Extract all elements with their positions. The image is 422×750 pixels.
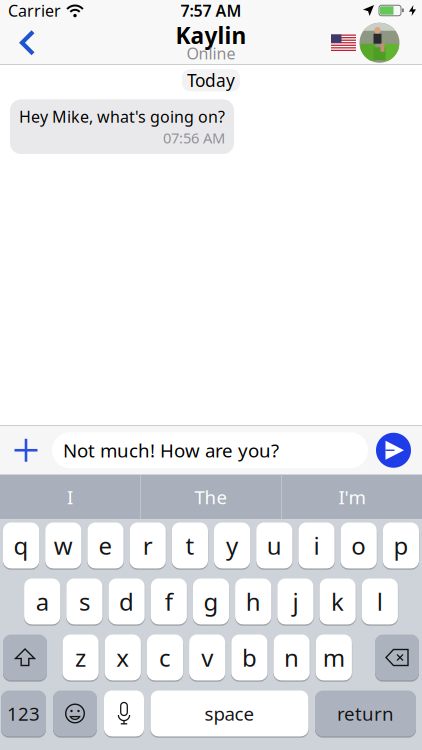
button[interactable]: i bbox=[298, 522, 335, 568]
staticText: b bbox=[242, 642, 257, 673]
button[interactable]: q bbox=[3, 522, 39, 568]
button[interactable]: return bbox=[315, 690, 416, 736]
button[interactable]: Emoji bbox=[53, 690, 97, 736]
button[interactable]: space bbox=[150, 690, 308, 736]
button[interactable]: r bbox=[130, 522, 166, 568]
button[interactable]: Profile bbox=[356, 23, 422, 63]
button[interactable]: p bbox=[383, 522, 419, 568]
button[interactable]: Shift bbox=[3, 634, 47, 680]
button[interactable]: 123 bbox=[1, 690, 46, 736]
button[interactable]: h bbox=[235, 578, 271, 624]
button[interactable]: s bbox=[66, 578, 102, 624]
button[interactable]: Dictate bbox=[104, 690, 144, 736]
staticText: The bbox=[194, 485, 227, 509]
staticText: w bbox=[54, 530, 73, 561]
button[interactable]: j bbox=[277, 578, 313, 624]
staticText: g bbox=[203, 586, 218, 617]
button[interactable]: a bbox=[24, 578, 60, 624]
staticText: u bbox=[267, 530, 282, 561]
staticText: d bbox=[119, 586, 134, 617]
staticText: 07:56 AM bbox=[163, 128, 225, 147]
button[interactable]: g bbox=[193, 578, 229, 624]
staticText: x bbox=[116, 642, 129, 673]
button[interactable]: Back bbox=[0, 22, 44, 64]
button[interactable]: k bbox=[319, 578, 356, 624]
staticText: v bbox=[201, 642, 213, 673]
button[interactable]: w bbox=[45, 522, 81, 568]
staticText: Hey Mike, what's going on? bbox=[19, 106, 225, 127]
button[interactable]: z bbox=[62, 634, 99, 680]
staticText: q bbox=[14, 530, 29, 561]
button[interactable]: v bbox=[189, 634, 225, 680]
staticText: s bbox=[79, 586, 90, 617]
staticText: Online bbox=[186, 43, 235, 64]
button[interactable]: I bbox=[0, 474, 140, 519]
staticText: space bbox=[204, 701, 254, 726]
staticText: I bbox=[67, 485, 73, 509]
button[interactable]: b bbox=[231, 634, 267, 680]
staticText: I'm bbox=[338, 485, 365, 509]
button[interactable]: Attach bbox=[0, 426, 52, 474]
button[interactable]: I'm bbox=[282, 474, 422, 519]
button[interactable]: y bbox=[214, 522, 250, 568]
button[interactable]: Language bbox=[331, 34, 356, 51]
button[interactable]: d bbox=[108, 578, 145, 624]
staticText: i bbox=[313, 530, 319, 561]
staticText: a bbox=[36, 586, 49, 617]
staticText: l bbox=[377, 586, 383, 617]
staticText: t bbox=[185, 530, 194, 561]
staticText: r bbox=[143, 530, 153, 561]
staticText: 123 bbox=[7, 701, 40, 726]
staticText: y bbox=[226, 530, 238, 561]
button[interactable]: Message field bbox=[52, 432, 368, 468]
staticText: Today bbox=[187, 69, 235, 92]
staticText: k bbox=[331, 586, 344, 617]
button[interactable]: Delete bbox=[375, 634, 419, 680]
staticText: n bbox=[284, 642, 299, 673]
staticText: z bbox=[75, 642, 86, 673]
staticText: Not much! How are you? bbox=[63, 438, 279, 463]
button[interactable]: n bbox=[273, 634, 310, 680]
staticText: 7:57 AM bbox=[180, 0, 241, 21]
staticText: p bbox=[393, 530, 408, 561]
staticText: Kaylin bbox=[175, 20, 246, 50]
button[interactable]: m bbox=[316, 634, 352, 680]
button[interactable]: The bbox=[141, 474, 281, 519]
staticText: m bbox=[323, 642, 345, 673]
button[interactable]: o bbox=[341, 522, 377, 568]
button[interactable]: x bbox=[105, 634, 141, 680]
button[interactable]: t bbox=[172, 522, 208, 568]
button[interactable]: f bbox=[151, 578, 187, 624]
staticText: h bbox=[246, 586, 261, 617]
staticText: f bbox=[165, 586, 173, 617]
button[interactable]: l bbox=[362, 578, 398, 624]
staticText: e bbox=[98, 530, 112, 561]
button[interactable]: Send bbox=[368, 433, 411, 468]
staticText: o bbox=[351, 530, 366, 561]
staticText: return bbox=[337, 701, 394, 726]
button[interactable]: u bbox=[256, 522, 292, 568]
staticText: Carrier bbox=[8, 0, 61, 21]
button[interactable]: e bbox=[87, 522, 124, 568]
staticText: c bbox=[159, 642, 171, 673]
staticText: j bbox=[292, 586, 298, 617]
button[interactable]: c bbox=[147, 634, 183, 680]
